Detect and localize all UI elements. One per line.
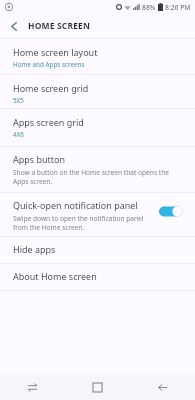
button[interactable]: Navigate up [0, 14, 28, 38]
staticText: Apps button [13, 153, 66, 165]
button[interactable]: Quick-open notification panel [0, 193, 195, 236]
button[interactable]: Recent apps [0, 375, 65, 400]
staticText: 88% [142, 3, 156, 12]
button[interactable]: Home screen layout [0, 39, 195, 74]
button[interactable]: Home [65, 375, 130, 400]
button[interactable]: Quick-open notification panel toggle [159, 204, 184, 218]
staticText: 4X6 [13, 130, 24, 139]
staticText: HOME SCREEN [28, 20, 91, 32]
staticText: Home screen grid [13, 82, 89, 94]
button[interactable]: Hide apps [0, 237, 195, 263]
button[interactable]: Apps screen grid [0, 109, 195, 146]
staticText: About Home screen [13, 270, 97, 282]
staticText: Swipe down to open the notification pane… [13, 214, 144, 232]
button[interactable]: Back [130, 375, 195, 400]
staticText: Show a button on the Home screen that op… [13, 168, 169, 186]
button[interactable]: Apps button [0, 147, 195, 192]
staticText: Quick-open notification panel [13, 199, 138, 211]
staticText: Hide apps [13, 243, 56, 255]
button[interactable]: About Home screen [0, 264, 195, 290]
staticText: Apps screen grid [13, 116, 84, 128]
staticText: Home screen layout [13, 46, 98, 58]
staticText: 8:26 PM [165, 3, 191, 12]
staticText: 5X5 [13, 96, 24, 105]
staticText: Home and Apps screens [13, 60, 85, 69]
button[interactable]: Home screen grid [0, 75, 195, 108]
